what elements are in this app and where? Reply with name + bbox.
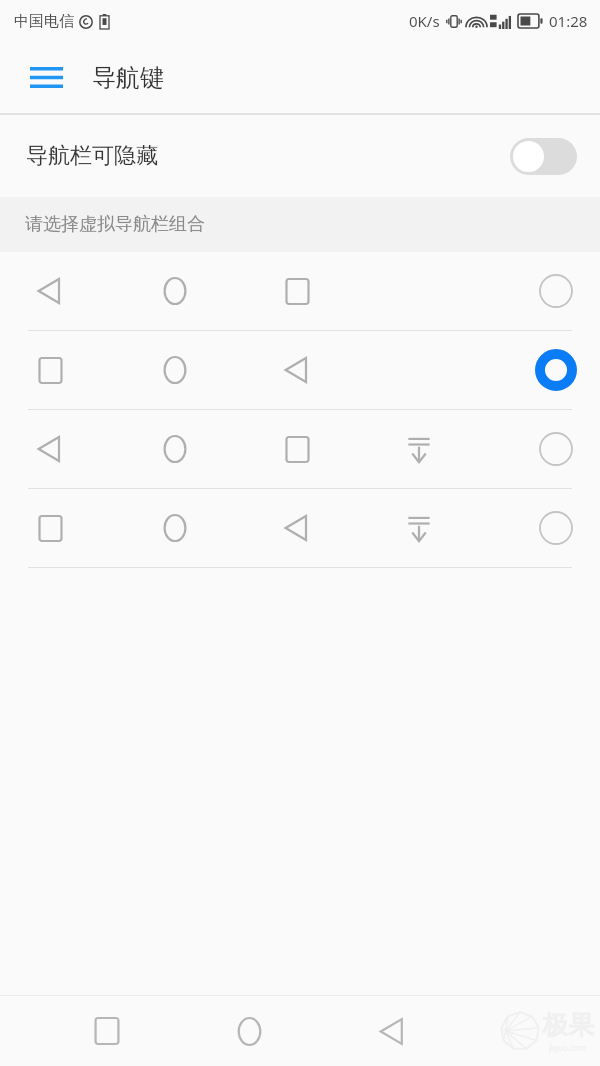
staticText: 中国电信 bbox=[14, 12, 74, 31]
staticText: 极果 bbox=[542, 1009, 594, 1042]
staticText: 导航键 bbox=[92, 63, 164, 93]
button[interactable]: Menu bbox=[0, 42, 92, 113]
staticText: 0K/s bbox=[409, 11, 440, 31]
button[interactable]: Navigation bar layout option bbox=[0, 489, 600, 567]
button[interactable]: Navigation bar layout option bbox=[0, 252, 600, 330]
button[interactable]: Home bbox=[214, 996, 284, 1066]
button[interactable]: Navigation bar layout option bbox=[0, 331, 600, 409]
staticText: 01:28 bbox=[549, 11, 588, 31]
button[interactable]: 导航栏可隐藏 bbox=[0, 115, 600, 197]
button[interactable]: Recents bbox=[72, 996, 142, 1066]
other: Toggle navigation bar hideable bbox=[510, 138, 577, 175]
staticText: 请选择虚拟导航栏组合 bbox=[25, 213, 205, 236]
staticText: jiguo.com bbox=[549, 1042, 587, 1053]
button[interactable]: Back bbox=[357, 996, 427, 1066]
button[interactable]: Navigation bar layout option bbox=[0, 410, 600, 488]
staticText: 导航栏可隐藏 bbox=[26, 142, 158, 170]
